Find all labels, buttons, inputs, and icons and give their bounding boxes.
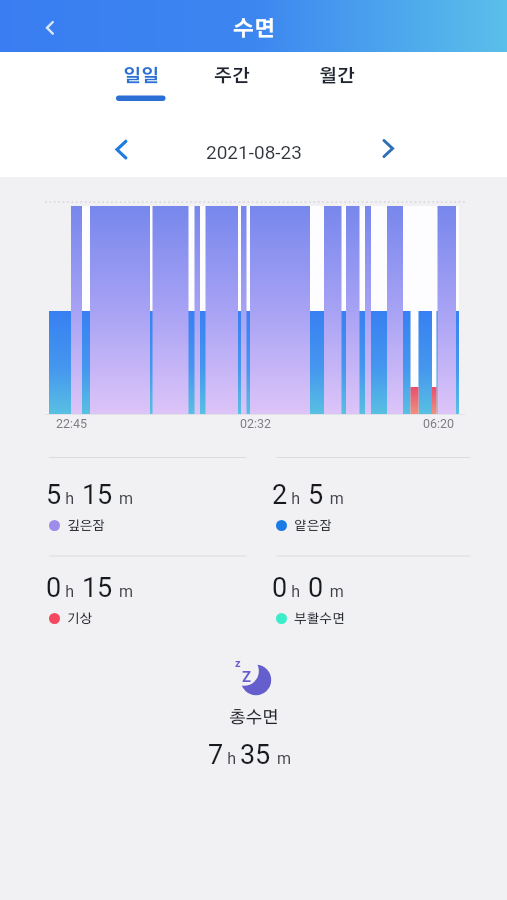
staticText: 5 h 15 m: [46, 479, 133, 511]
staticText: 2021-08-23: [206, 141, 302, 163]
button[interactable]: 일일: [111, 55, 171, 99]
staticText: z: [235, 657, 241, 670]
staticText: 2 h 5 m: [272, 479, 344, 511]
staticText: 월간: [319, 68, 355, 86]
button[interactable]: [163, 133, 343, 165]
staticText: 총수면: [229, 709, 279, 726]
button[interactable]: 주간: [202, 55, 262, 99]
button[interactable]: 월간: [307, 55, 367, 99]
staticText: Z: [242, 668, 252, 686]
staticText: 일일: [123, 68, 159, 86]
staticText: 얕은잠: [294, 520, 332, 533]
staticText: 0 h 15 m: [46, 572, 133, 604]
staticText: 수면: [233, 19, 275, 40]
staticText: 깊은잠: [67, 520, 105, 533]
staticText: 7 h 35 m: [208, 739, 292, 771]
staticText: 06:20: [423, 416, 455, 431]
button[interactable]: [105, 133, 139, 167]
staticText: 22:45: [56, 416, 88, 431]
staticText: 부활수면: [294, 613, 345, 626]
staticText: 주간: [214, 68, 250, 86]
staticText: 0 h 0 m: [272, 572, 344, 604]
staticText: 02:32: [240, 416, 272, 431]
button[interactable]: [30, 6, 70, 48]
button[interactable]: [371, 131, 405, 165]
staticText: 기상: [67, 613, 93, 626]
